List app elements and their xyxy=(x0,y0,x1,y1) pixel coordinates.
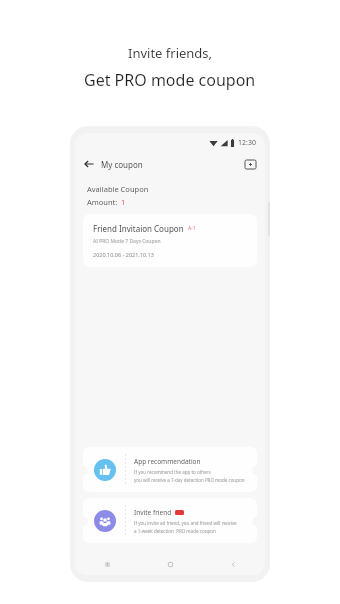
staticText: App recommendation xyxy=(134,457,201,466)
staticText: 2020.10.06 - 2021.10.13 xyxy=(93,251,154,258)
button[interactable]: Back xyxy=(82,157,143,171)
button[interactable]: Home xyxy=(139,553,202,575)
staticText: Friend Invitaion Coupon xyxy=(93,223,184,234)
staticText: Amount: xyxy=(87,197,118,207)
button[interactable]: Invite friend xyxy=(83,498,257,543)
staticText: you will receive a 7-day detection PRO m… xyxy=(134,477,245,483)
button[interactable]: Friend Invitaion Coupon xyxy=(83,214,257,267)
staticText: Invite friend xyxy=(134,508,172,517)
staticText: If you recommend the app to others xyxy=(134,469,211,475)
button[interactable]: App recommendation xyxy=(83,447,257,492)
staticText: AI PRO Mode 7 Days Coupon xyxy=(93,238,161,245)
staticText: 12:30 xyxy=(238,138,256,148)
staticText: Available Coupon xyxy=(87,184,149,194)
other: Back xyxy=(82,157,96,171)
staticText: a 1-week detection PRO mode coupon xyxy=(134,528,216,534)
staticText: If you invite ad friend, you and friend … xyxy=(134,520,237,526)
staticText: My coupon xyxy=(101,159,143,170)
staticText: Invite friends, xyxy=(128,44,213,62)
button[interactable]: Recent apps xyxy=(75,553,139,575)
staticText: A-1 xyxy=(188,225,196,232)
staticText: Get PRO mode coupon xyxy=(84,69,256,91)
staticText: 1 xyxy=(121,197,126,207)
button[interactable]: Add coupon xyxy=(242,156,258,172)
